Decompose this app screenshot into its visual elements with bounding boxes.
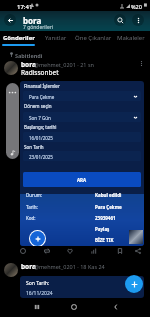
staticText: Son 7 Gün	[29, 115, 51, 121]
button[interactable]: Bookmark	[115, 246, 125, 256]
staticText: %20	[131, 3, 142, 10]
staticText: Para Çekme	[95, 204, 122, 210]
staticText: 17:41	[17, 3, 33, 11]
button[interactable]: Views	[89, 246, 99, 256]
staticText: BİZE TIK	[95, 237, 114, 243]
button[interactable]: Gönderiler	[0, 31, 37, 47]
staticText: Yanıtlar	[45, 34, 67, 42]
staticText: 16/11/2024	[26, 290, 53, 297]
button[interactable]: Öne Çıkanlar	[74, 31, 112, 47]
staticText: Başlangıç tarihi	[24, 124, 57, 130]
button[interactable]: Yanıtlar	[37, 31, 74, 47]
button[interactable]: Compose post	[125, 275, 143, 293]
button[interactable]: ARA	[23, 172, 141, 187]
staticText: Son Tarih:	[26, 280, 50, 287]
button[interactable]: More	[137, 59, 146, 68]
staticText: ARA	[77, 177, 87, 183]
button[interactable]: Add	[30, 231, 45, 246]
staticText: Tarih:	[26, 204, 38, 210]
staticText: 23939461	[95, 215, 116, 221]
button[interactable]: Recents	[31, 301, 43, 313]
button[interactable]: 16/01/2025	[23, 132, 141, 142]
staticText: Son Tarih	[24, 144, 44, 150]
staticText: 23/01/2025	[29, 154, 53, 160]
staticText: Kod:	[26, 215, 36, 221]
staticText: Dönem seçin	[24, 103, 52, 109]
button[interactable]: 23/01/2025	[23, 151, 141, 161]
button[interactable]: Para Çekme	[23, 91, 141, 101]
staticText: Para Çekme	[29, 94, 55, 100]
button[interactable]: Makaleler	[112, 31, 150, 47]
staticText: bora	[21, 262, 36, 271]
button[interactable]: Back	[4, 14, 16, 26]
staticText: Makaleler	[117, 34, 145, 42]
button[interactable]: More options	[132, 14, 144, 26]
button[interactable]: Home	[68, 301, 80, 313]
staticText: Gönderiler	[3, 34, 35, 42]
staticText: Kabul edildi	[95, 192, 122, 198]
staticText: Sabitlendi	[15, 52, 43, 59]
staticText: Durum:	[26, 192, 43, 198]
button[interactable]: Share	[133, 246, 143, 256]
button[interactable]: Repost	[42, 246, 52, 256]
staticText: bora	[21, 60, 36, 69]
staticText: Paylaş	[95, 226, 110, 232]
staticText: Radissonbet	[21, 68, 59, 77]
button[interactable]: Reply	[18, 246, 28, 256]
button[interactable]: Search	[114, 14, 126, 26]
staticText: @mehmet_0201 · 18 Kas 24	[34, 263, 105, 270]
staticText: 16/01/2025	[29, 135, 53, 141]
staticText: Öne Çıkanlar	[75, 34, 112, 42]
button[interactable]: Like	[65, 246, 75, 256]
staticText: bora	[23, 15, 42, 26]
button[interactable]: Back	[110, 301, 122, 313]
staticText: Finansal İşlemler	[24, 83, 60, 89]
staticText: @mehmet_0201 · 21 sn	[34, 61, 94, 68]
staticText: 7 gönderileri	[23, 24, 54, 31]
button[interactable]: Son 7 Gün	[23, 112, 141, 122]
